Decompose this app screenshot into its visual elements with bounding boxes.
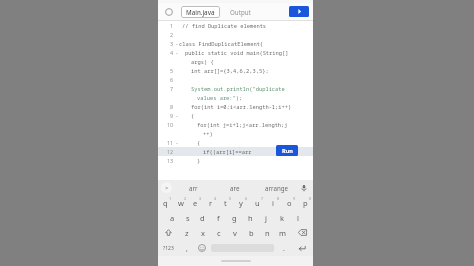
- button[interactable]: Voice input: [298, 182, 310, 194]
- staticText: ++): [203, 130, 213, 137]
- staticText: 5: [229, 196, 232, 201]
- button[interactable]: Output: [230, 8, 251, 16]
- staticText: .: [283, 244, 285, 253]
- staticText: -: [176, 49, 178, 56]
- staticText: are: [230, 184, 240, 192]
- button[interactable]: m: [275, 225, 291, 240]
- staticText: j: [265, 213, 267, 223]
- staticText: 3: [170, 40, 174, 47]
- staticText: 2: [170, 31, 174, 38]
- staticText: ?123: [163, 245, 174, 252]
- button[interactable]: j: [258, 210, 274, 225]
- button[interactable]: t: [218, 195, 233, 210]
- staticText: f: [217, 213, 220, 223]
- staticText: 6: [170, 76, 174, 83]
- staticText: n: [265, 228, 270, 238]
- staticText: Main.java: [186, 8, 215, 16]
- staticText: values are:");: [197, 94, 243, 101]
- button[interactable]: a: [165, 210, 180, 225]
- button[interactable]: Shift: [158, 225, 179, 240]
- button[interactable]: b: [243, 225, 259, 240]
- staticText: 8: [170, 103, 174, 110]
- button[interactable]: Run: [276, 145, 298, 156]
- staticText: {: [191, 112, 195, 119]
- staticText: for(int i=0;i<arr.length-1;i++): [191, 103, 292, 110]
- staticText: k: [280, 213, 285, 223]
- staticText: u: [255, 198, 260, 208]
- staticText: q: [163, 198, 168, 208]
- staticText: g: [232, 213, 237, 223]
- button[interactable]: u: [249, 195, 265, 210]
- staticText: x: [201, 228, 205, 238]
- button[interactable]: More suggestions: [161, 182, 172, 193]
- staticText: Run: [282, 147, 293, 155]
- staticText: for(int j=i+1;j<arr.length;j: [197, 121, 288, 128]
- staticText: -: [176, 40, 178, 47]
- staticText: if((arr[i]==arr: [203, 148, 252, 155]
- staticText: 9: [170, 112, 174, 119]
- staticText: 3: [199, 196, 202, 201]
- button[interactable]: e: [188, 195, 203, 210]
- staticText: r: [209, 198, 213, 208]
- staticText: -: [176, 139, 178, 146]
- staticText: 5: [170, 67, 174, 74]
- staticText: a: [170, 213, 175, 223]
- staticText: 1: [169, 196, 172, 201]
- staticText: 13: [167, 157, 174, 164]
- button[interactable]: g: [226, 210, 242, 225]
- button[interactable]: v: [227, 225, 243, 240]
- button[interactable]: l: [290, 210, 306, 225]
- button[interactable]: i: [265, 195, 281, 210]
- staticText: 12: [167, 148, 174, 155]
- button[interactable]: y: [233, 195, 249, 210]
- button[interactable]: s: [180, 210, 195, 225]
- button[interactable]: Menu: [162, 5, 175, 18]
- button[interactable]: c: [211, 225, 227, 240]
- button[interactable]: o: [281, 195, 297, 210]
- button[interactable]: are: [214, 180, 256, 195]
- staticText: System.out.println("duplicate: [191, 85, 285, 92]
- staticText: 11: [167, 139, 174, 146]
- staticText: 8: [277, 196, 280, 201]
- button[interactable]: Emoji: [194, 240, 209, 256]
- staticText: o: [287, 198, 292, 208]
- staticText: args) {: [191, 58, 214, 65]
- button[interactable]: z: [179, 225, 195, 240]
- button[interactable]: k: [274, 210, 290, 225]
- staticText: p: [303, 198, 308, 208]
- button[interactable]: .: [276, 240, 291, 256]
- staticText: 1: [170, 22, 174, 29]
- button[interactable]: p: [297, 195, 313, 210]
- button[interactable]: w: [173, 195, 188, 210]
- button[interactable]: d: [195, 210, 210, 225]
- button[interactable]: q: [158, 195, 173, 210]
- staticText: h: [248, 213, 253, 223]
- staticText: t: [224, 198, 227, 208]
- staticText: l: [297, 213, 299, 223]
- staticText: int arr[]={3,4,6,2,3,5};: [191, 67, 269, 74]
- button[interactable]: arr: [172, 180, 214, 195]
- staticText: i: [272, 198, 274, 208]
- button[interactable]: Run: [289, 6, 309, 17]
- button[interactable]: arrange: [256, 180, 298, 195]
- staticText: s: [186, 213, 190, 223]
- button[interactable]: r: [203, 195, 218, 210]
- staticText: class FindDuplicatElement{: [179, 40, 264, 47]
- button[interactable]: f: [210, 210, 226, 225]
- button[interactable]: ?123: [158, 240, 179, 256]
- button[interactable]: h: [242, 210, 258, 225]
- staticText: m: [279, 228, 287, 238]
- button[interactable]: x: [195, 225, 211, 240]
- button[interactable]: Main.java: [186, 8, 215, 16]
- button[interactable]: n: [259, 225, 275, 240]
- staticText: y: [239, 198, 243, 208]
- staticText: c: [217, 228, 221, 238]
- button[interactable]: Backspace: [291, 225, 313, 240]
- button[interactable]: ,: [179, 240, 194, 256]
- staticText: d: [200, 213, 205, 223]
- staticText: 7: [261, 196, 264, 201]
- staticText: 0: [309, 196, 312, 201]
- button[interactable]: Enter: [291, 240, 313, 256]
- staticText: ,: [186, 244, 188, 253]
